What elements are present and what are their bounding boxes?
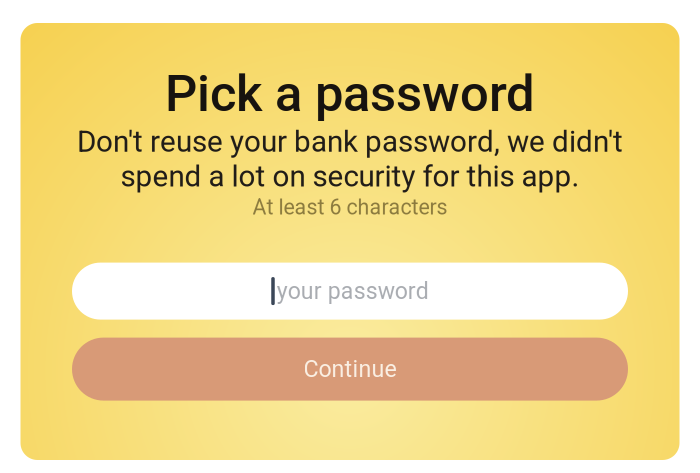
- staticText: Pick a password: [165, 64, 535, 123]
- staticText: spend a lot on security for this app.: [120, 159, 579, 194]
- staticText: At least 6 characters: [252, 195, 447, 220]
- button[interactable]: your password: [72, 263, 628, 320]
- staticText: your password: [277, 278, 429, 305]
- button[interactable]: Continue: [72, 338, 628, 401]
- staticText: Continue: [303, 355, 396, 383]
- staticText: Don't reuse your bank password, we didn'…: [77, 124, 623, 159]
